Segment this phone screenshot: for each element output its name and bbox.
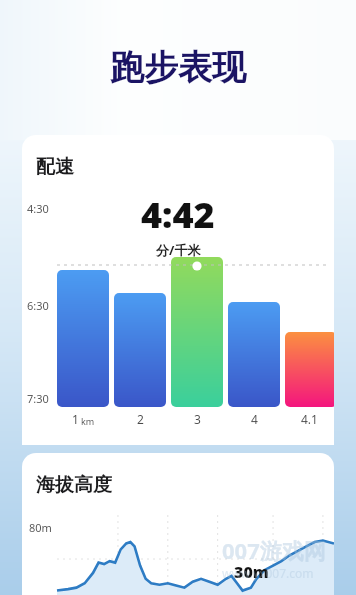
staticText: 007游戏网 bbox=[222, 535, 326, 565]
staticText: 分/千米 bbox=[156, 241, 201, 259]
button[interactable]: 海拔高度 bbox=[22, 453, 334, 595]
staticText: 30m bbox=[234, 561, 269, 583]
staticText: 跑步表现 bbox=[110, 46, 246, 89]
staticText: 3 bbox=[194, 411, 201, 427]
staticText: 4:42 bbox=[141, 190, 215, 239]
staticText: 海拔高度 bbox=[36, 473, 112, 497]
staticText: 4 bbox=[251, 411, 258, 427]
staticText: 7:30 bbox=[27, 391, 49, 406]
staticText: 4:30 bbox=[27, 201, 49, 216]
staticText: 4.1 bbox=[301, 411, 318, 427]
staticText: 2 bbox=[137, 411, 144, 427]
staticText: 配速 bbox=[36, 155, 74, 179]
staticText: 1 bbox=[72, 411, 79, 427]
staticText: 80m bbox=[29, 520, 52, 535]
staticText: km bbox=[81, 415, 95, 427]
staticText: 6:30 bbox=[27, 298, 49, 313]
staticText: www.yx007.com bbox=[222, 565, 314, 581]
button[interactable]: Elevation chart bbox=[22, 505, 334, 595]
button[interactable]: 配速 bbox=[22, 135, 334, 445]
